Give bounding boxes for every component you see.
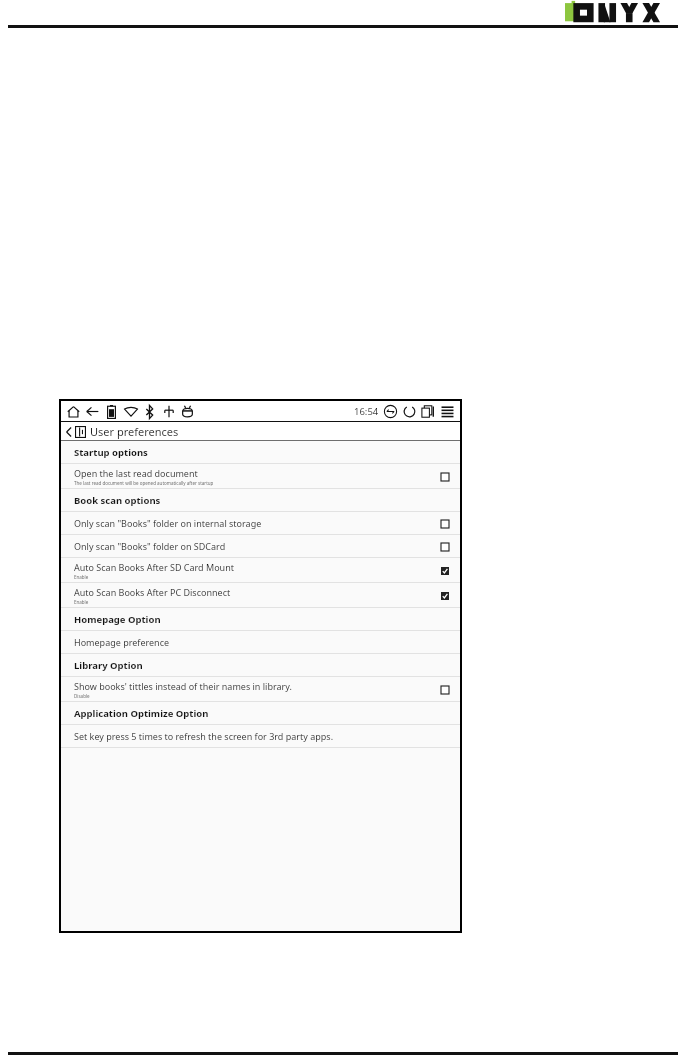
button[interactable]: Only scan "Books" folder on internal sto… bbox=[61, 512, 460, 534]
button[interactable]: Set key press 5 times to refresh the scr… bbox=[61, 725, 460, 747]
button[interactable]: A to A bbox=[381, 402, 400, 421]
staticText: Show books' tittles instead of their nam… bbox=[74, 680, 292, 692]
button[interactable]: Back bbox=[83, 402, 102, 421]
button[interactable]: Android bbox=[178, 402, 197, 421]
button[interactable]: Homepage preference bbox=[61, 631, 460, 653]
button[interactable]: Library Option bbox=[61, 654, 460, 676]
staticText: Enable bbox=[74, 574, 89, 580]
button[interactable]: Back bbox=[65, 425, 73, 439]
button[interactable]: Bluetooth bbox=[140, 402, 159, 421]
button[interactable]: Menu bbox=[438, 402, 457, 421]
button[interactable]: Show books' tittles instead of their nam… bbox=[61, 677, 460, 701]
button[interactable]: Battery bbox=[102, 402, 121, 421]
button[interactable]: Auto Scan Books After PC Disconnect bbox=[61, 583, 460, 607]
staticText: Application Optimize Option bbox=[74, 707, 209, 720]
staticText: Startup options bbox=[74, 446, 148, 459]
button[interactable]: USB bbox=[159, 402, 178, 421]
button[interactable]: Show books' tittles instead of their nam… bbox=[438, 683, 451, 696]
staticText: Book scan options bbox=[74, 494, 161, 507]
button[interactable]: Windows bbox=[419, 402, 438, 421]
staticText: Auto Scan Books After SD Card Mount bbox=[74, 561, 234, 573]
button[interactable]: Open the last read document bbox=[438, 470, 451, 483]
button[interactable]: Only scan "Books" folder on SDCard bbox=[438, 540, 451, 553]
staticText: Library Option bbox=[74, 659, 143, 672]
staticText: Open the last read document bbox=[74, 467, 198, 479]
button[interactable]: Open the last read document bbox=[61, 464, 460, 488]
button[interactable]: Book scan options bbox=[61, 489, 460, 511]
staticText: 16:54 bbox=[354, 405, 379, 418]
staticText: Set key press 5 times to refresh the scr… bbox=[74, 730, 334, 742]
staticText: Only scan "Books" folder on SDCard bbox=[74, 540, 226, 552]
staticText: User preferences bbox=[90, 424, 179, 439]
staticText: Disable bbox=[74, 693, 90, 699]
staticText: Enable bbox=[74, 599, 89, 605]
button[interactable]: Wi-Fi bbox=[121, 402, 140, 421]
button[interactable]: Refresh bbox=[400, 402, 419, 421]
staticText: Only scan "Books" folder on internal sto… bbox=[74, 517, 262, 529]
button[interactable]: Only scan "Books" folder on internal sto… bbox=[438, 517, 451, 530]
staticText: Homepage Option bbox=[74, 613, 161, 626]
button[interactable]: Homepage Option bbox=[61, 608, 460, 630]
staticText: Auto Scan Books After PC Disconnect bbox=[74, 586, 231, 598]
button[interactable]: Application Optimize Option bbox=[61, 702, 460, 724]
button[interactable]: Auto Scan Books After PC Disconnect bbox=[438, 589, 451, 602]
button[interactable]: Startup options bbox=[61, 441, 460, 463]
staticText: Homepage preference bbox=[74, 636, 170, 648]
button[interactable]: Home bbox=[64, 402, 83, 421]
button[interactable]: Only scan "Books" folder on SDCard bbox=[61, 535, 460, 557]
button[interactable]: Auto Scan Books After SD Card Mount bbox=[438, 564, 451, 577]
button[interactable]: Auto Scan Books After SD Card Mount bbox=[61, 558, 460, 582]
staticText: The last read document will be opened au… bbox=[74, 480, 214, 486]
